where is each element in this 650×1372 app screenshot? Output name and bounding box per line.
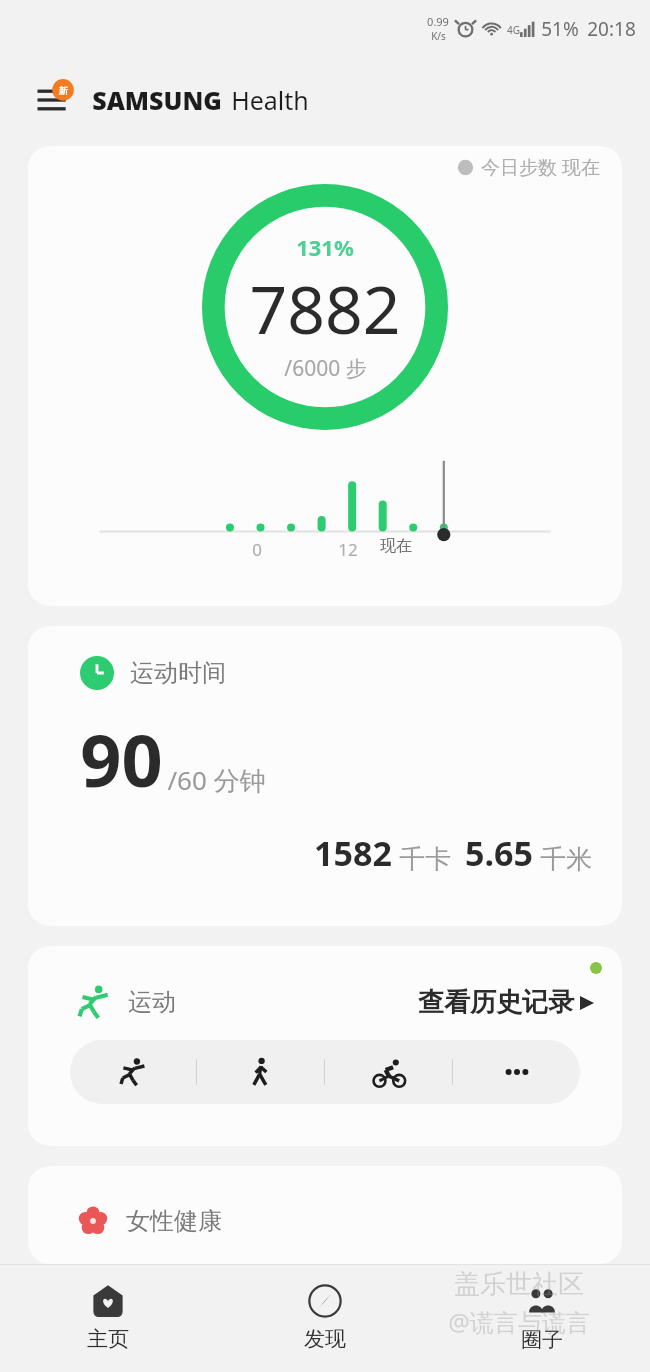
button[interactable]: 运动 bbox=[28, 946, 622, 1146]
button[interactable]: Walking bbox=[197, 1040, 324, 1104]
staticText: 90 bbox=[80, 710, 163, 808]
staticText: 4G bbox=[507, 23, 520, 37]
button[interactable]: Menu bbox=[30, 74, 82, 126]
staticText: 新 bbox=[59, 85, 68, 96]
button[interactable]: More bbox=[453, 1040, 580, 1104]
button[interactable]: 发现 bbox=[216, 1264, 433, 1372]
staticText: 5.65 bbox=[465, 830, 533, 876]
button[interactable]: 女性健康 bbox=[28, 1166, 622, 1264]
button[interactable]: 运动时间 bbox=[28, 626, 622, 926]
staticText: 现在 bbox=[380, 536, 412, 556]
staticText: /6000 步 bbox=[284, 354, 367, 383]
staticText: 1582 bbox=[314, 830, 392, 876]
staticText: 12 bbox=[338, 538, 358, 561]
staticText: 运动 bbox=[128, 987, 176, 1017]
staticText: SAMSUNG bbox=[92, 83, 222, 117]
staticText: 今日步数 现在 bbox=[481, 154, 600, 180]
staticText: 女性健康 bbox=[126, 1206, 222, 1236]
staticText: 发现 bbox=[304, 1326, 346, 1352]
staticText: @谎言与谎言 bbox=[448, 1305, 590, 1338]
staticText: 20:18 bbox=[587, 16, 636, 42]
staticText: 查看历史记录 bbox=[418, 986, 574, 1019]
staticText: 圈子 bbox=[521, 1327, 563, 1353]
staticText: 主页 bbox=[87, 1326, 129, 1352]
staticText: /60 分钟 bbox=[167, 762, 266, 798]
staticText: 7882 bbox=[249, 263, 401, 353]
button[interactable]: 查看历史记录 bbox=[418, 986, 594, 1019]
button[interactable]: 主页 bbox=[0, 1264, 216, 1372]
staticText: 千米 bbox=[540, 843, 592, 876]
staticText: 51% bbox=[541, 16, 579, 42]
staticText: 运动时间 bbox=[130, 658, 226, 688]
button[interactable]: Running bbox=[70, 1040, 196, 1104]
button[interactable]: Cycling bbox=[325, 1040, 452, 1104]
staticText: 千卡 bbox=[399, 843, 451, 876]
staticText: 131% bbox=[296, 232, 354, 262]
staticText: 盖乐世社区 bbox=[454, 1268, 584, 1301]
staticText: 0 bbox=[252, 538, 262, 561]
staticText: 0.99 bbox=[427, 14, 449, 29]
button[interactable]: 今日步数 现在 bbox=[28, 146, 622, 606]
staticText: Health bbox=[231, 83, 309, 117]
button[interactable]: 圈子 bbox=[433, 1264, 650, 1372]
staticText: K/s bbox=[431, 29, 446, 43]
